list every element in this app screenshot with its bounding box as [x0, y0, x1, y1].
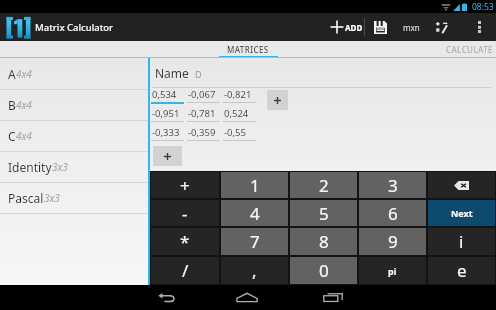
staticText: i [459, 230, 464, 253]
staticText: -0,951 [152, 107, 180, 120]
button[interactable]: 1 [221, 172, 288, 198]
staticText: Name [155, 65, 189, 81]
staticText: MATRICES [227, 44, 269, 55]
button[interactable]: Recents [313, 285, 353, 310]
staticText: 4x4 [16, 67, 32, 81]
staticText: 0 [319, 259, 329, 282]
button[interactable]: B [0, 90, 148, 120]
button[interactable]: Operations [429, 13, 455, 41]
staticText: Next [451, 207, 473, 219]
button[interactable]: A [0, 59, 148, 89]
staticText: B [8, 97, 16, 113]
staticText: 8 [319, 230, 329, 253]
button[interactable]: 7 [221, 228, 288, 255]
staticText: 0,534 [152, 88, 177, 101]
button[interactable]: Home [227, 285, 267, 310]
staticText: 5 [319, 202, 329, 225]
button[interactable]: + [151, 172, 219, 198]
staticText: CALCULATE [446, 44, 493, 55]
staticText: 7 [250, 230, 260, 253]
staticText: 4x4 [16, 129, 32, 143]
staticText: -0,55 [224, 126, 246, 139]
button[interactable]: Back [146, 285, 186, 310]
staticText: C [8, 128, 16, 144]
staticText: + [180, 174, 190, 197]
button[interactable]: e [428, 257, 495, 284]
staticText: 3x3 [52, 160, 68, 174]
button[interactable]: ADD [325, 13, 363, 41]
button[interactable]: 8 [290, 228, 357, 255]
button[interactable]: CALCULATE [348, 41, 496, 58]
staticText: -0,333 [152, 126, 180, 139]
staticText: e [457, 259, 467, 282]
button[interactable]: , [221, 257, 288, 284]
button[interactable]: C [0, 121, 148, 151]
staticText: Pascal [8, 190, 44, 206]
staticText: 3 [388, 174, 398, 197]
staticText: 3x3 [44, 191, 60, 205]
staticText: -0,781 [188, 107, 216, 120]
staticText: -0,821 [224, 88, 252, 101]
staticText: 9 [388, 230, 398, 253]
button[interactable]: / [151, 257, 219, 284]
button[interactable]: pi [359, 257, 426, 284]
staticText: * [180, 230, 190, 253]
button[interactable]: 3 [359, 172, 426, 198]
staticText: -0,067 [188, 88, 216, 101]
staticText: 4x4 [16, 98, 32, 112]
staticText: mxn [403, 22, 420, 33]
staticText: ADD [345, 22, 363, 33]
staticText: 6 [388, 202, 398, 225]
staticText: A [8, 66, 16, 82]
staticText: 1 [250, 174, 260, 197]
staticText: 4 [250, 202, 260, 225]
button[interactable]: Pascal [0, 183, 148, 213]
button[interactable]: 9 [359, 228, 426, 255]
button[interactable]: mxn [395, 13, 428, 41]
staticText: -0,359 [188, 126, 216, 139]
button[interactable]: 2 [290, 172, 357, 198]
button[interactable]: 0 [290, 257, 357, 284]
button[interactable]: 5 [290, 200, 357, 226]
staticText: 0,524 [224, 107, 249, 120]
button[interactable]: i [428, 228, 495, 255]
staticText: / [182, 259, 189, 282]
button[interactable]: Save [367, 13, 394, 41]
staticText: 08:53 [472, 1, 494, 13]
button[interactable]: - [151, 200, 219, 226]
staticText: pi [388, 265, 397, 277]
staticText: Matrix Calculator [35, 21, 114, 34]
button[interactable]: 4 [221, 200, 288, 226]
staticText: - [182, 202, 188, 225]
button[interactable]: * [151, 228, 219, 255]
staticText: Identity [8, 159, 52, 175]
button[interactable] [267, 90, 288, 110]
other: Backspace [454, 181, 469, 190]
button[interactable]: More options [471, 13, 488, 41]
button[interactable]: Backspace [428, 172, 495, 198]
staticText: 2 [319, 174, 329, 197]
button[interactable]: 6 [359, 200, 426, 226]
staticText: , [252, 259, 257, 282]
button[interactable] [153, 146, 182, 166]
staticText: D [195, 68, 202, 80]
button[interactable]: Identity [0, 152, 148, 182]
button[interactable]: MATRICES [148, 41, 348, 58]
button[interactable]: Next [428, 200, 495, 226]
